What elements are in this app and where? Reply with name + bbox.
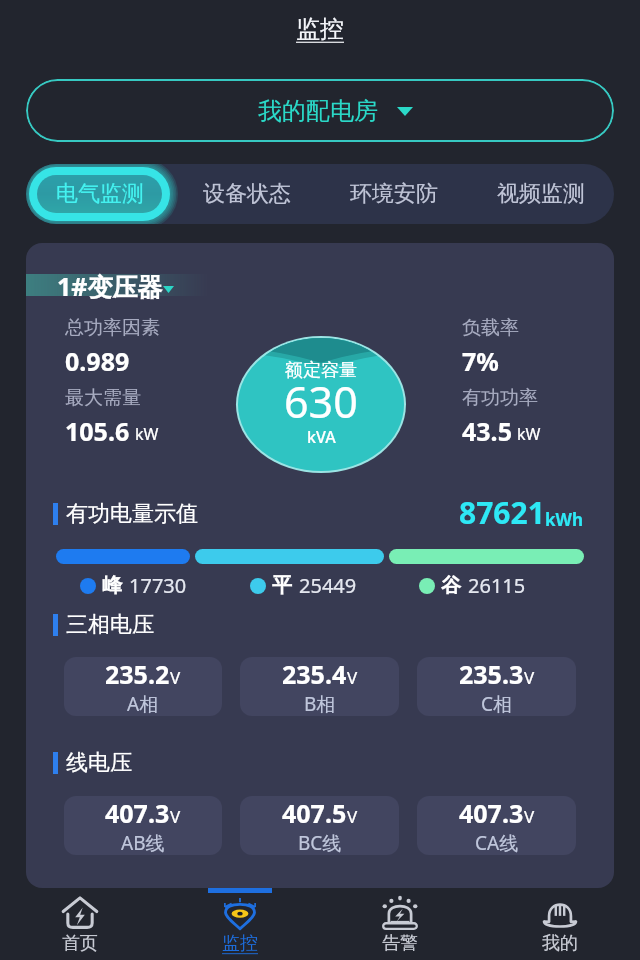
staticText: 线电压: [66, 749, 132, 777]
staticText: 监控: [296, 14, 344, 44]
staticText: V: [524, 805, 535, 828]
staticText: 235.2: [105, 657, 170, 691]
staticText: 我的: [542, 932, 578, 955]
button[interactable]: 1#变压器: [57, 269, 174, 303]
staticText: 有功功率: [462, 386, 538, 410]
button[interactable]: 235.4: [240, 657, 399, 716]
button[interactable]: 407.3: [64, 796, 222, 855]
staticText: kW: [517, 423, 541, 445]
staticText: 407.3: [459, 796, 524, 830]
staticText: 总功率因素: [65, 316, 160, 340]
staticText: A相: [127, 691, 159, 716]
staticText: 负载率: [462, 316, 519, 340]
button[interactable]: 407.5: [240, 796, 399, 855]
staticText: kW: [135, 423, 159, 445]
staticText: 视频监测: [497, 180, 585, 208]
staticText: 有功电量示值: [66, 500, 198, 528]
button[interactable]: Alarms: [320, 888, 480, 960]
staticText: 630: [284, 372, 358, 431]
staticText: kWh: [545, 508, 584, 531]
button[interactable]: Home: [0, 888, 160, 960]
staticText: B相: [304, 691, 336, 716]
button[interactable]: 235.3: [417, 657, 576, 716]
staticText: 87621: [459, 492, 545, 533]
staticText: 监控: [222, 932, 258, 955]
staticText: 235.3: [459, 657, 524, 691]
staticText: V: [170, 805, 181, 828]
staticText: 我的配电房: [258, 96, 378, 126]
staticText: 峰: [102, 573, 122, 598]
staticText: 电气监测: [56, 180, 144, 208]
staticText: CA线: [475, 830, 519, 855]
staticText: 7%: [462, 344, 499, 378]
button[interactable]: 407.3: [417, 796, 576, 855]
staticText: V: [170, 666, 181, 689]
staticText: 首页: [62, 932, 98, 955]
staticText: 最大需量: [65, 386, 141, 410]
staticText: 235.4: [282, 657, 347, 691]
staticText: 1#变压器: [57, 269, 163, 303]
button[interactable]: Monitoring: [160, 888, 320, 960]
staticText: BC线: [298, 830, 342, 855]
staticText: C相: [481, 691, 513, 716]
staticText: V: [347, 805, 358, 828]
staticText: 407.5: [282, 796, 347, 830]
staticText: 额定容量: [285, 359, 357, 382]
staticText: AB线: [121, 830, 165, 855]
staticText: 407.3: [105, 796, 170, 830]
staticText: V: [347, 666, 358, 689]
button[interactable]: 设备状态: [173, 164, 320, 224]
staticText: 25449: [299, 572, 357, 599]
button[interactable]: 我的配电房: [26, 79, 614, 142]
staticText: 0.989: [65, 344, 130, 378]
staticText: kVA: [307, 426, 336, 448]
button[interactable]: Profile: [480, 888, 640, 960]
staticText: 105.6: [65, 414, 130, 448]
button[interactable]: 电气监测: [26, 164, 173, 224]
button[interactable]: 视频监测: [467, 164, 614, 224]
staticText: 告警: [382, 932, 418, 955]
staticText: 26115: [468, 572, 526, 599]
button[interactable]: 环境安防: [320, 164, 467, 224]
button[interactable]: 235.2: [64, 657, 222, 716]
staticText: 环境安防: [350, 180, 438, 208]
staticText: 43.5: [462, 414, 512, 448]
staticText: 谷: [441, 573, 461, 598]
staticText: 设备状态: [203, 180, 291, 208]
staticText: V: [524, 666, 535, 689]
staticText: 平: [272, 573, 292, 598]
staticText: 三相电压: [66, 611, 154, 639]
staticText: 17730: [129, 572, 187, 599]
